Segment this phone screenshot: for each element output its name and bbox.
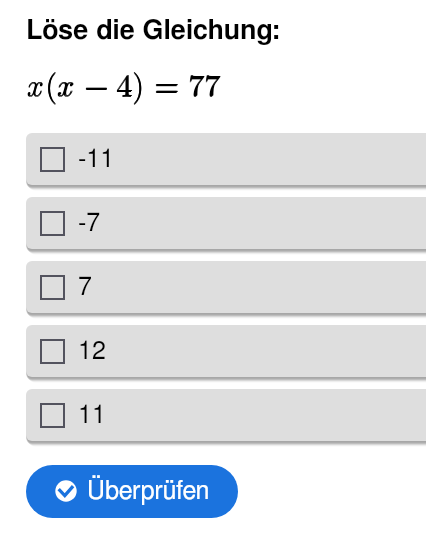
staticText: 77 [188,61,221,106]
staticText: ) [132,60,145,105]
staticText: -11 [78,147,115,172]
staticText: -7 [78,211,101,236]
staticText: 77 [189,60,222,105]
staticText: ( [45,60,58,105]
other: Überprüfen [54,479,78,503]
staticText: Löse die Gleichung: [26,17,280,44]
staticText: x [26,60,41,105]
staticText: 4 [117,60,134,105]
staticText: − [84,61,109,106]
staticText: x [56,61,71,106]
staticText: x [26,61,41,106]
staticText: 4 [116,61,133,106]
staticText: ) [132,60,145,105]
button[interactable]: 12 [26,325,426,377]
button[interactable]: -11 [26,133,426,185]
staticText: − [84,60,109,105]
staticText: = [154,61,179,106]
staticText: x [56,60,71,105]
staticText: 7 [78,275,92,300]
staticText: − [84,60,109,105]
staticText: 12 [78,339,106,364]
button[interactable]: -7 [26,197,426,249]
staticText: = [154,60,179,105]
staticText: 77 [188,60,221,105]
staticText: ) [132,61,145,106]
staticText: x [57,60,72,105]
button[interactable]: Überprüfen [26,465,238,518]
staticText: x [26,60,41,105]
staticText: ( [45,61,58,106]
staticText: 11 [78,403,106,428]
button[interactable]: 7 [26,261,426,313]
staticText: ( [45,60,58,105]
button[interactable]: 11 [26,389,426,441]
staticText: Überprüfen [87,479,210,504]
staticText: 4 [116,60,133,105]
staticText: = [155,60,180,105]
